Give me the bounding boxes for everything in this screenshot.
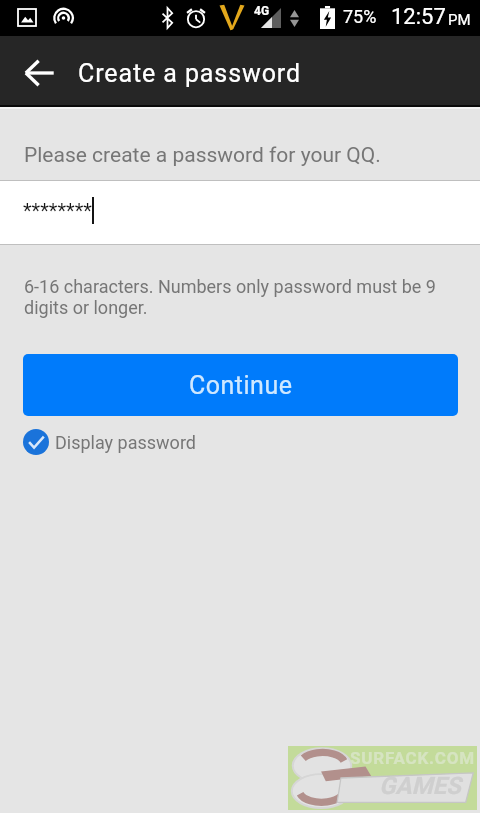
- staticText: PM: [448, 11, 471, 29]
- button[interactable]: Continue: [23, 354, 458, 416]
- staticText: Display password: [55, 432, 196, 453]
- button[interactable]: Back: [12, 45, 66, 99]
- staticText: 6-16 characters. Numbers only password m…: [24, 276, 439, 319]
- button[interactable]: Display password: [23, 429, 196, 455]
- staticText: ********: [23, 199, 92, 222]
- staticText: 12:57: [391, 4, 446, 30]
- staticText: Please create a password for your QQ.: [24, 143, 381, 168]
- staticText: GAMES: [379, 772, 461, 800]
- staticText: Continue: [189, 371, 293, 400]
- staticText: 75%: [343, 6, 377, 27]
- staticText: 4G: [254, 4, 270, 18]
- staticText: SURFACK.COM: [350, 748, 475, 768]
- staticText: Create a password: [78, 59, 301, 88]
